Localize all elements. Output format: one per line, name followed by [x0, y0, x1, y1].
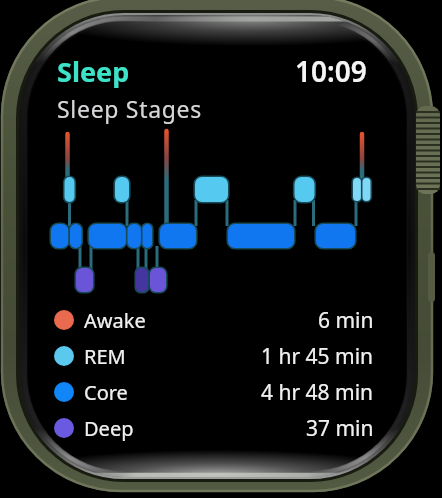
button[interactable]: Sleep — [57, 53, 130, 90]
staticText: Awake — [84, 307, 146, 334]
button[interactable]: Deep — [54, 410, 374, 446]
button[interactable]: Core — [54, 374, 374, 410]
staticText: Sleep Stages — [57, 93, 202, 124]
staticText: REM — [84, 343, 126, 370]
staticText: 1 hr 45 min — [261, 342, 374, 371]
staticText: 37 min — [306, 414, 374, 443]
button[interactable]: REM — [54, 338, 374, 374]
staticText: Deep — [84, 415, 134, 442]
button[interactable] — [0, 0, 442, 498]
staticText: Core — [84, 379, 128, 406]
staticText: 4 hr 48 min — [261, 378, 374, 407]
staticText: 10:09 — [295, 52, 367, 90]
button[interactable]: Awake — [54, 302, 374, 338]
staticText: 6 min — [318, 306, 374, 335]
